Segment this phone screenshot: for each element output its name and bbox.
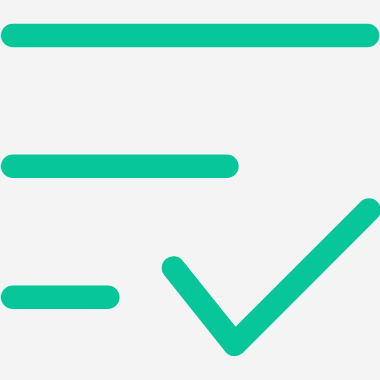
- button[interactable]: Completed checklist: [0, 0, 380, 380]
